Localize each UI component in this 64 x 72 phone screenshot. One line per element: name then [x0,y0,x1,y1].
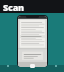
button[interactable] [18,16,47,67]
button[interactable]: Capture [30,64,35,68]
staticText: Scan [3,1,24,13]
